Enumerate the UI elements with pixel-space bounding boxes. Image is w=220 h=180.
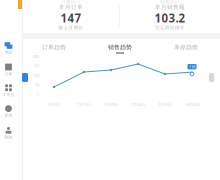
- staticText: 消息: [4, 50, 12, 55]
- staticText: 销售趋势: [108, 43, 132, 51]
- staticText: 工作台: [2, 92, 14, 97]
- staticText: 本月销售额: [155, 4, 185, 11]
- staticText: 我的: [4, 135, 12, 140]
- staticText: 7月30日: [158, 102, 172, 107]
- staticText: 7月15日: [77, 102, 91, 107]
- staticText: 订单统计: [61, 0, 81, 5]
- staticText: 库存趋势: [174, 43, 198, 51]
- button[interactable]: 库存趋势: [153, 43, 219, 53]
- staticText: 7月20日: [104, 102, 118, 107]
- staticText: 118: [189, 64, 195, 69]
- staticText: 较上月增长: [58, 25, 83, 31]
- button[interactable]: 工作台: [0, 84, 17, 97]
- staticText: 200: [33, 54, 39, 59]
- staticText: 订单: [4, 71, 12, 76]
- staticText: 8月04日: [186, 102, 200, 107]
- staticText: 本月订单: [59, 4, 83, 11]
- button[interactable]: 库存: [0, 105, 17, 118]
- staticText: 订单趋势: [42, 43, 66, 51]
- button[interactable]: 订单: [0, 64, 17, 77]
- staticText: 147: [60, 10, 81, 26]
- staticText: 0: [37, 91, 39, 97]
- button[interactable]: 订单趋势: [21, 43, 87, 53]
- button[interactable]: 销售统计: [120, 0, 220, 33]
- button[interactable]: 最新数值 118: [187, 64, 196, 69]
- staticText: 库存: [4, 113, 12, 118]
- staticText: 100: [33, 72, 39, 78]
- button[interactable]: 销售趋势: [87, 43, 153, 53]
- staticText: 销售统计: [160, 0, 180, 5]
- button[interactable]: 消息: [0, 42, 17, 55]
- button[interactable]: 订单统计: [23, 0, 119, 33]
- staticText: 103.2: [154, 10, 185, 26]
- staticText: 7月10日: [47, 102, 61, 107]
- button[interactable]: 展开左侧面板: [22, 73, 28, 82]
- button[interactable]: 收起右侧面板: [209, 73, 214, 82]
- staticText: 7月25日: [131, 102, 145, 107]
- staticText: 万元同比增长: [155, 25, 185, 31]
- staticText: 150: [33, 63, 39, 68]
- button[interactable]: 我的: [0, 127, 17, 140]
- staticText: 50: [35, 82, 39, 87]
